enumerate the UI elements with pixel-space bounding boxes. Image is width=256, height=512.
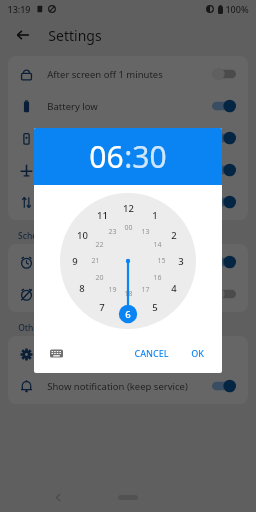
button[interactable]: Toggle on (212, 163, 236, 177)
staticText: Airplane mode (47, 164, 113, 177)
staticText: 22 (95, 240, 104, 250)
staticText: 00 (124, 223, 133, 233)
button[interactable]: Toggle off (212, 67, 236, 81)
button[interactable]: Airplane mode (8, 154, 248, 186)
staticText: Schedule on (47, 256, 102, 269)
button[interactable]: Battery low (8, 90, 248, 122)
staticText: After screen off 1 minutes (47, 68, 163, 81)
button[interactable]: OK (185, 343, 210, 363)
staticText: 100% (225, 3, 249, 15)
staticText: Battery low (47, 100, 98, 113)
staticText: OK (191, 347, 204, 359)
staticText: 10 (77, 229, 88, 242)
staticText: 13 (141, 227, 150, 237)
button[interactable]: USB connected (8, 122, 248, 154)
staticText: Advance WiFi Settings (47, 348, 145, 361)
staticText: Other (18, 322, 42, 334)
staticText: 12 (123, 202, 134, 215)
button[interactable]: Toggle off (212, 287, 236, 301)
staticText: 6 (125, 308, 131, 321)
button[interactable]: Back (50, 489, 66, 505)
button[interactable]: Toggle on (212, 99, 236, 113)
staticText: 1 (152, 209, 158, 222)
button[interactable]: Toggle on (212, 379, 236, 393)
button[interactable]: Data transfer (8, 186, 248, 218)
staticText: Data transfer (47, 196, 106, 209)
staticText: Schedule off (47, 288, 103, 301)
staticText: 18 (124, 289, 133, 299)
staticText: 20 (95, 273, 104, 283)
staticText: 11 (97, 209, 108, 222)
staticText: 14 (153, 240, 162, 250)
staticText: 9 (72, 255, 78, 268)
staticText: 15 (157, 256, 166, 266)
staticText: 23 (108, 227, 117, 237)
staticText: 7 (99, 301, 105, 314)
button[interactable]: Toggle on (212, 255, 236, 269)
button[interactable]: Switch to keyboard input (46, 343, 66, 363)
button[interactable]: After screen off 1 minutes (8, 58, 248, 90)
button[interactable]: Schedule on (8, 246, 248, 278)
staticText: Schedule (18, 230, 55, 242)
button[interactable]: CANCEL (128, 343, 175, 363)
staticText: CANCEL (134, 347, 169, 359)
staticText: 13:19 (7, 3, 31, 15)
button[interactable]: Toggle on (212, 195, 236, 209)
button[interactable]: Toggle on (212, 131, 236, 145)
button[interactable]: Back (10, 22, 36, 48)
staticText: 19 (108, 285, 117, 295)
staticText: 16 (153, 273, 162, 283)
staticText: :30 (124, 136, 167, 177)
staticText: 8 (79, 282, 85, 295)
staticText: 06 (89, 136, 124, 177)
staticText: 5 (152, 301, 158, 314)
staticText: 17 (141, 285, 150, 295)
button[interactable]: Schedule off (8, 278, 248, 310)
staticText: 21 (91, 256, 100, 266)
staticText: 2 (171, 229, 177, 242)
staticText: Settings (48, 26, 102, 45)
button[interactable]: Advance WiFi Settings (8, 338, 248, 370)
staticText: 4 (171, 282, 177, 295)
button[interactable]: Show notification (keep service) (8, 370, 248, 402)
staticText: 3 (178, 255, 184, 268)
staticText: Show notification (keep service) (47, 380, 188, 393)
